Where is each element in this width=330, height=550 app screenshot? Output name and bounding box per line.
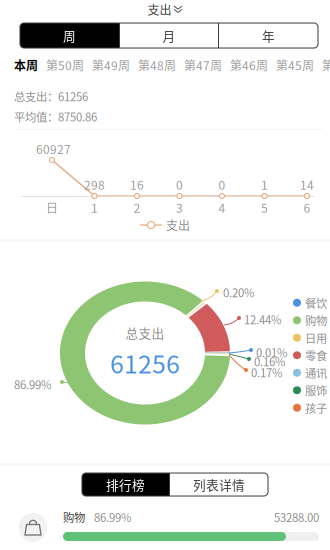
staticText: 5	[261, 199, 268, 216]
button[interactable]: 周	[20, 23, 119, 48]
staticText: 购物	[305, 312, 327, 328]
staticText: 53288.00	[274, 509, 319, 525]
staticText: 年	[262, 26, 275, 45]
button[interactable]: 年	[219, 23, 318, 48]
staticText: 月	[162, 26, 175, 45]
staticText: 日用	[305, 329, 327, 346]
staticText: 3	[176, 199, 183, 216]
staticText: 周	[63, 26, 76, 45]
staticText: 298	[84, 176, 105, 193]
staticText: 2	[133, 199, 140, 216]
staticText: 60927	[36, 140, 71, 157]
staticText: 0	[218, 176, 225, 193]
staticText: 餐饮	[305, 294, 327, 311]
button[interactable]: 第46周	[230, 56, 268, 74]
staticText: 购物	[63, 509, 85, 525]
button[interactable]: 列表详情	[170, 473, 268, 496]
staticText: 第44周	[322, 56, 330, 74]
button[interactable]: 第44周	[322, 56, 330, 74]
staticText: 本周	[14, 56, 38, 74]
staticText: 16	[130, 176, 144, 193]
staticText: 12.44%	[244, 311, 281, 327]
staticText: 0	[176, 176, 183, 193]
staticText: 0.20%	[223, 284, 254, 300]
staticText: 总支出：61256	[14, 88, 88, 104]
staticText: 0.01%	[256, 344, 287, 360]
button[interactable]: 第48周	[138, 56, 176, 74]
button[interactable]: 支出	[0, 1, 330, 18]
staticText: 第46周	[230, 56, 268, 74]
staticText: 61256	[110, 345, 180, 380]
staticText: 支出	[147, 1, 171, 18]
staticText: 6	[303, 199, 310, 216]
staticText: 总支出	[125, 323, 164, 342]
staticText: 孩子	[305, 399, 327, 416]
button[interactable]: 第50周	[46, 56, 84, 74]
staticText: 零食	[305, 347, 327, 363]
staticText: 平均值：8750.86	[14, 108, 97, 125]
staticText: 86.99%	[85, 509, 131, 525]
staticText: 第47周	[184, 56, 222, 74]
staticText: 14	[300, 176, 314, 193]
staticText: 4	[218, 199, 225, 216]
staticText: 服饰	[305, 382, 327, 398]
button[interactable]: 本周	[14, 56, 38, 74]
button[interactable]: 第45周	[276, 56, 314, 74]
staticText: 列表详情	[193, 475, 245, 494]
button[interactable]: 月	[120, 23, 218, 48]
staticText: 支出	[166, 216, 190, 234]
staticText: 1	[261, 176, 268, 193]
staticText: 第48周	[138, 56, 176, 74]
button[interactable]: 购物	[0, 505, 330, 550]
staticText: 0.17%	[251, 364, 282, 380]
button[interactable]: 排行榜	[82, 473, 169, 496]
staticText: 第45周	[276, 56, 314, 74]
button[interactable]: 第49周	[92, 56, 130, 74]
staticText: 第50周	[46, 56, 84, 74]
staticText: 通讯	[305, 364, 327, 381]
staticText: 0.16%	[254, 353, 285, 369]
staticText: 日	[46, 199, 58, 216]
staticText: 1	[91, 199, 98, 216]
staticText: 第49周	[92, 56, 130, 74]
staticText: 86.99%	[14, 376, 51, 392]
button[interactable]: 第47周	[184, 56, 222, 74]
staticText: 排行榜	[106, 475, 145, 494]
